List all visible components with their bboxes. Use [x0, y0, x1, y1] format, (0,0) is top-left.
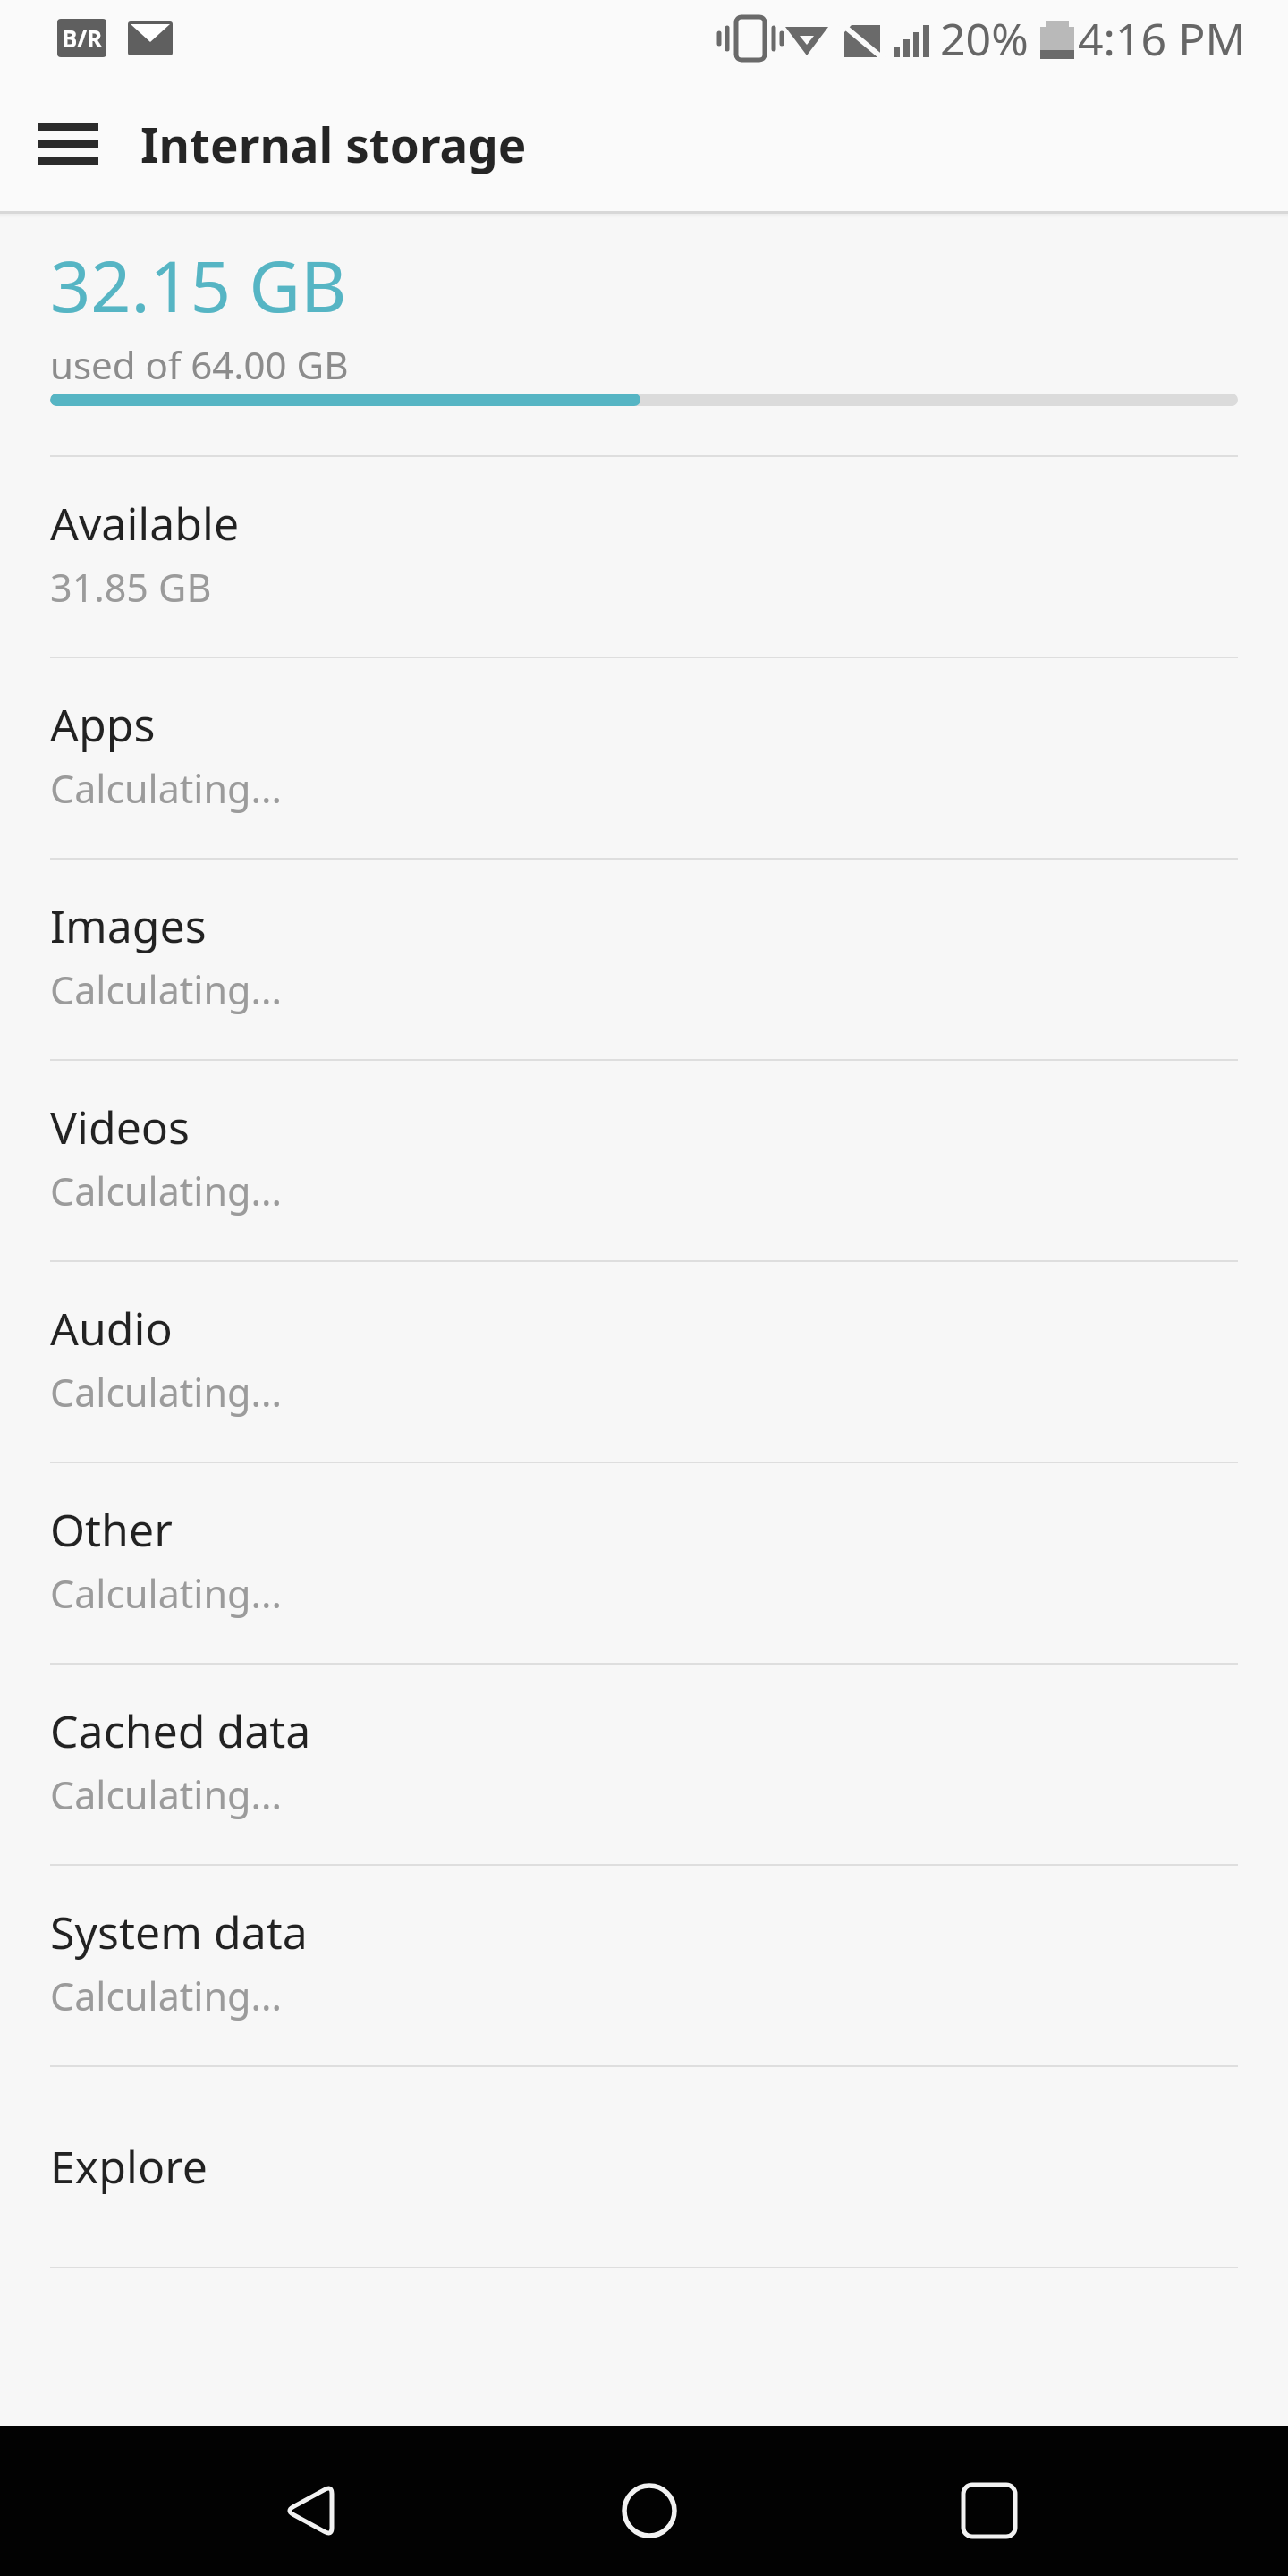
- staticText: Images: [50, 895, 207, 956]
- staticText: Videos: [50, 1097, 191, 1157]
- button[interactable]: [914, 2426, 1064, 2576]
- staticText: System data: [50, 1902, 308, 1962]
- button[interactable]: Apps: [0, 658, 1288, 860]
- staticText: Calculating...: [50, 1768, 283, 1821]
- staticText: Cached data: [50, 1700, 311, 1761]
- button[interactable]: Audio: [0, 1262, 1288, 1463]
- button[interactable]: Explore: [0, 2067, 1288, 2268]
- button[interactable]: [574, 2426, 724, 2576]
- staticText: 32.15 GB: [50, 237, 347, 334]
- staticText: Calculating...: [50, 1366, 283, 1419]
- button[interactable]: Images: [0, 860, 1288, 1061]
- button[interactable]: Cached data: [0, 1665, 1288, 1866]
- staticText: Available: [50, 493, 240, 554]
- staticText: used of 64.00 GB: [50, 339, 349, 390]
- staticText: Calculating...: [50, 963, 283, 1016]
- staticText: 31.85 GB: [50, 561, 212, 614]
- staticText: Calculating...: [50, 762, 283, 815]
- staticText: 4:16 PM: [1078, 8, 1246, 69]
- button[interactable]: Other: [0, 1463, 1288, 1665]
- button[interactable]: [0, 76, 136, 211]
- staticText: 20%: [940, 8, 1029, 69]
- staticText: Internal storage: [140, 112, 527, 176]
- button[interactable]: Videos: [0, 1061, 1288, 1262]
- button[interactable]: Available: [0, 457, 1288, 658]
- button[interactable]: [234, 2426, 385, 2576]
- staticText: B/R: [62, 22, 103, 54]
- staticText: Audio: [50, 1298, 173, 1359]
- staticText: Calculating...: [50, 1970, 283, 2022]
- staticText: Apps: [50, 694, 156, 755]
- staticText: Other: [50, 1499, 173, 1560]
- staticText: Explore: [50, 2136, 208, 2197]
- staticText: Calculating...: [50, 1567, 283, 1620]
- staticText: Calculating...: [50, 1165, 283, 1217]
- button[interactable]: System data: [0, 1866, 1288, 2067]
